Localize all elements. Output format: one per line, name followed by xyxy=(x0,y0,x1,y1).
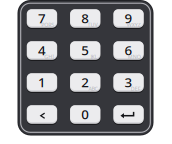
button[interactable]: 4 xyxy=(27,41,57,60)
button[interactable]: 6 xyxy=(113,41,144,60)
button[interactable]: 1 xyxy=(27,73,57,92)
staticText: 3 xyxy=(125,73,133,91)
staticText: WXYZ xyxy=(127,21,141,28)
staticText: 0 xyxy=(81,105,89,123)
staticText: 2 xyxy=(81,73,89,91)
staticText: PQRS xyxy=(41,21,54,28)
button[interactable]: 9 xyxy=(113,9,144,28)
staticText: 9 xyxy=(125,9,133,27)
button[interactable]: 7 xyxy=(27,9,57,28)
staticText: 4 xyxy=(38,41,46,59)
staticText: 8 xyxy=(81,9,89,27)
button[interactable]: 5 xyxy=(70,41,100,60)
staticText: ABC xyxy=(88,85,97,92)
button[interactable]: 0 xyxy=(70,105,100,124)
button[interactable]: 2 xyxy=(70,73,100,92)
staticText: 5 xyxy=(81,41,89,59)
button[interactable]: Back xyxy=(27,105,57,124)
staticText: 6 xyxy=(125,41,133,59)
staticText: MNO xyxy=(128,53,141,60)
staticText: DEF xyxy=(131,85,141,92)
staticText: 7 xyxy=(38,9,46,27)
staticText: TUV xyxy=(87,21,97,28)
button[interactable]: Enter xyxy=(113,105,144,124)
button[interactable]: 8 xyxy=(70,9,100,28)
staticText: GHI xyxy=(44,53,54,60)
staticText: 1 xyxy=(38,73,46,91)
staticText: JKL xyxy=(90,53,97,60)
button[interactable]: 3 xyxy=(113,73,144,92)
